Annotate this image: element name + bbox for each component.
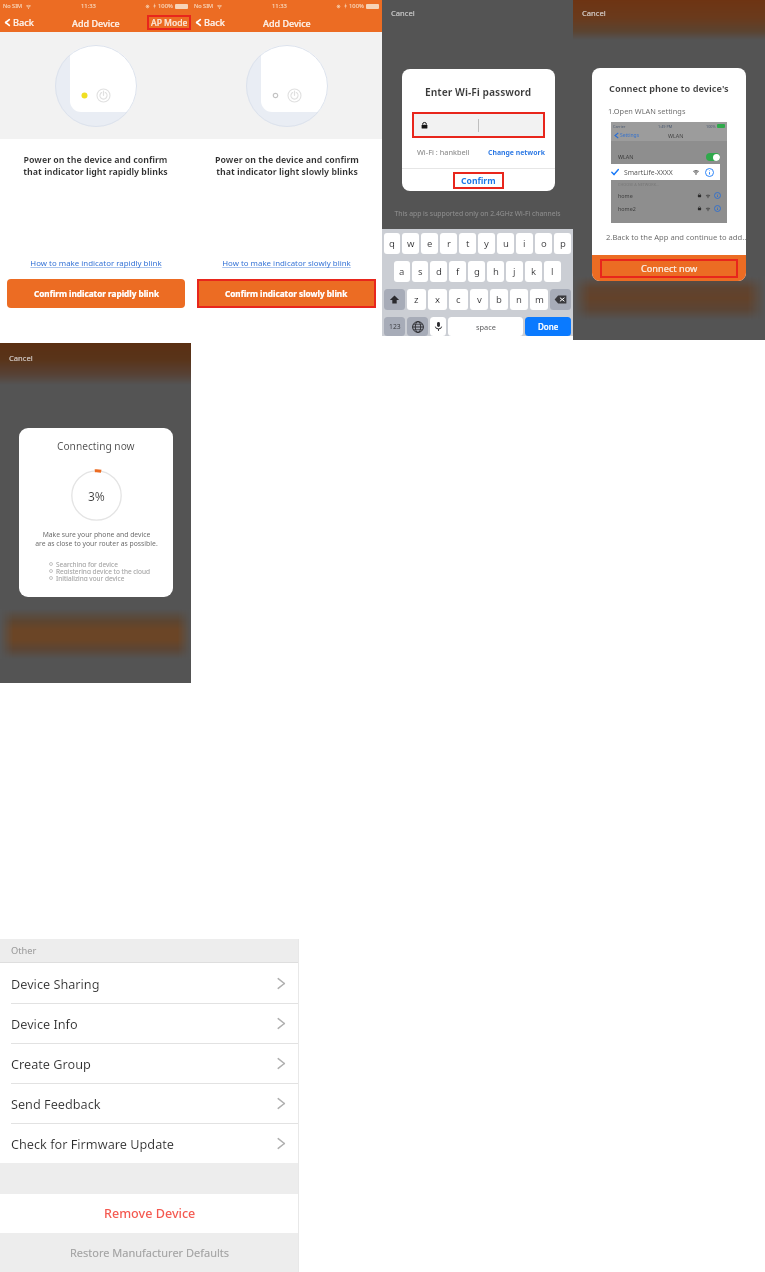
- staticText: Remove Device: [104, 1205, 196, 1222]
- staticText: Settings: [620, 132, 640, 139]
- button[interactable]: Cancel: [391, 8, 415, 18]
- button[interactable]: m: [530, 289, 548, 310]
- staticText: f: [456, 265, 460, 278]
- button[interactable]: Back: [191, 14, 229, 31]
- staticText: c: [456, 293, 461, 306]
- button[interactable]: Remove Device: [0, 1194, 299, 1233]
- staticText: WLAN: [618, 153, 634, 160]
- staticText: CHOOSE A NETWORK...: [618, 182, 660, 187]
- button[interactable]: s: [412, 261, 428, 282]
- staticText: This app is supported only on 2.4GHz Wi-…: [394, 209, 561, 218]
- staticText: p: [560, 237, 566, 250]
- staticText: u: [503, 237, 509, 250]
- button[interactable]: space: [448, 317, 523, 336]
- button[interactable]: u: [497, 233, 514, 254]
- staticText: Check for Firmware Update: [11, 1135, 174, 1152]
- button[interactable]: r: [440, 233, 457, 254]
- button[interactable]: e: [421, 233, 438, 254]
- staticText: Initializing your device: [56, 574, 125, 581]
- staticText: Power on the device and confirm that ind…: [215, 154, 359, 178]
- staticText: o: [541, 237, 547, 250]
- button[interactable]: How to make indicator rapidly blink: [30, 258, 162, 269]
- staticText: Connect phone to device's: [609, 82, 729, 95]
- button[interactable]: Dictation: [430, 317, 446, 336]
- staticText: Device Info: [11, 1015, 78, 1032]
- button[interactable]: Connect now: [592, 255, 746, 281]
- button[interactable]: SmartLife-XXXX: [604, 164, 720, 180]
- button[interactable]: w: [402, 233, 419, 254]
- button[interactable]: t: [459, 233, 476, 254]
- button[interactable]: f: [449, 261, 466, 282]
- button[interactable]: Done: [525, 317, 571, 336]
- staticText: Confirm: [461, 175, 496, 187]
- button[interactable]: d: [430, 261, 447, 282]
- staticText: 11:33: [272, 2, 287, 10]
- staticText: n: [516, 293, 522, 306]
- button[interactable]: Send Feedback: [0, 1084, 299, 1123]
- button[interactable]: z: [407, 289, 426, 310]
- button[interactable]: y: [478, 233, 495, 254]
- button[interactable]: q: [384, 233, 400, 254]
- button[interactable]: x: [428, 289, 447, 310]
- staticText: y: [484, 237, 489, 250]
- button[interactable]: Backspace: [550, 289, 571, 310]
- button[interactable]: g: [468, 261, 485, 282]
- staticText: No SIM: [194, 2, 214, 10]
- staticText: r: [447, 237, 451, 250]
- staticText: Make sure your phone and device are as c…: [35, 530, 158, 548]
- button[interactable]: Change keyboard: [407, 317, 428, 336]
- staticText: Back: [204, 16, 225, 29]
- button[interactable]: Device Sharing: [0, 963, 299, 1003]
- button[interactable]: Confirm indicator rapidly blink: [7, 279, 185, 308]
- button[interactable]: k: [525, 261, 542, 282]
- staticText: home: [618, 192, 633, 199]
- staticText: Carrier: [613, 124, 626, 129]
- button[interactable]: Shift: [384, 289, 405, 310]
- staticText: home2: [618, 205, 636, 212]
- staticText: Back: [13, 16, 34, 29]
- button[interactable]: l: [544, 261, 561, 282]
- button[interactable]: 123: [384, 317, 405, 336]
- button[interactable]: b: [490, 289, 508, 310]
- staticText: b: [496, 293, 502, 306]
- staticText: 1:49 PM: [658, 124, 673, 129]
- button[interactable]: n: [510, 289, 528, 310]
- staticText: j: [513, 265, 516, 278]
- button[interactable]: o: [535, 233, 552, 254]
- button[interactable]: Change network: [488, 148, 545, 157]
- staticText: v: [477, 293, 482, 306]
- staticText: WLAN: [668, 132, 684, 139]
- staticText: 2.Back to the App and continue to add...: [606, 232, 746, 242]
- staticText: Enter Wi-Fi password: [425, 85, 532, 99]
- staticText: l: [551, 265, 554, 278]
- staticText: No SIM: [3, 2, 23, 10]
- button[interactable]: AP Mode: [147, 15, 191, 30]
- staticText: a: [399, 265, 405, 278]
- button[interactable]: c: [449, 289, 468, 310]
- staticText: SmartLife-XXXX: [624, 168, 673, 177]
- button[interactable]: i: [516, 233, 533, 254]
- staticText: e: [427, 237, 433, 250]
- button[interactable]: a: [394, 261, 410, 282]
- button[interactable]: Cancel: [9, 353, 33, 363]
- button[interactable]: Device Info: [0, 1004, 299, 1043]
- button[interactable]: j: [506, 261, 523, 282]
- button[interactable]: Back: [0, 14, 38, 31]
- button[interactable]: v: [470, 289, 488, 310]
- button[interactable]: Confirm: [453, 172, 504, 189]
- button[interactable]: h: [487, 261, 504, 282]
- staticText: h: [493, 265, 499, 278]
- button[interactable]: How to make indicator slowly blink: [222, 258, 351, 269]
- button[interactable]: Confirm indicator slowly blink: [197, 279, 376, 308]
- staticText: m: [535, 293, 544, 306]
- button[interactable]: Create Group: [0, 1044, 299, 1083]
- staticText: Create Group: [11, 1055, 91, 1072]
- staticText: w: [407, 237, 415, 250]
- staticText: q: [389, 237, 395, 250]
- button[interactable]: p: [554, 233, 571, 254]
- staticText: 100%: [349, 2, 364, 10]
- button[interactable]: Restore Manufacturer Defaults: [0, 1233, 299, 1272]
- staticText: Restore Manufacturer Defaults: [70, 1245, 230, 1260]
- button[interactable]: Cancel: [582, 8, 606, 18]
- button[interactable]: Check for Firmware Update: [0, 1124, 299, 1163]
